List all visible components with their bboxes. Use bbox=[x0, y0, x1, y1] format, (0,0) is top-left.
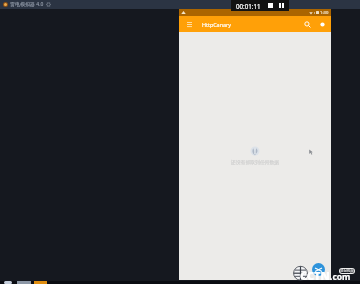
staticText: HttpCanary bbox=[202, 21, 231, 28]
staticText: .com bbox=[330, 271, 351, 283]
staticText: 00:01:11 bbox=[236, 2, 261, 10]
staticText: 原创视频 bbox=[340, 269, 354, 273]
staticText: 还没有抓取到任何数据 bbox=[231, 159, 279, 165]
button[interactable]: Search bbox=[300, 17, 314, 31]
button[interactable]: Menu bbox=[183, 18, 196, 31]
button[interactable]: Start capture bbox=[315, 17, 329, 31]
staticText: CCTN bbox=[300, 268, 330, 283]
staticText: 1:30 bbox=[320, 10, 329, 16]
staticText: 雷电模拟器 4.0 bbox=[10, 1, 44, 8]
button[interactable]: Pause recording bbox=[279, 3, 284, 8]
